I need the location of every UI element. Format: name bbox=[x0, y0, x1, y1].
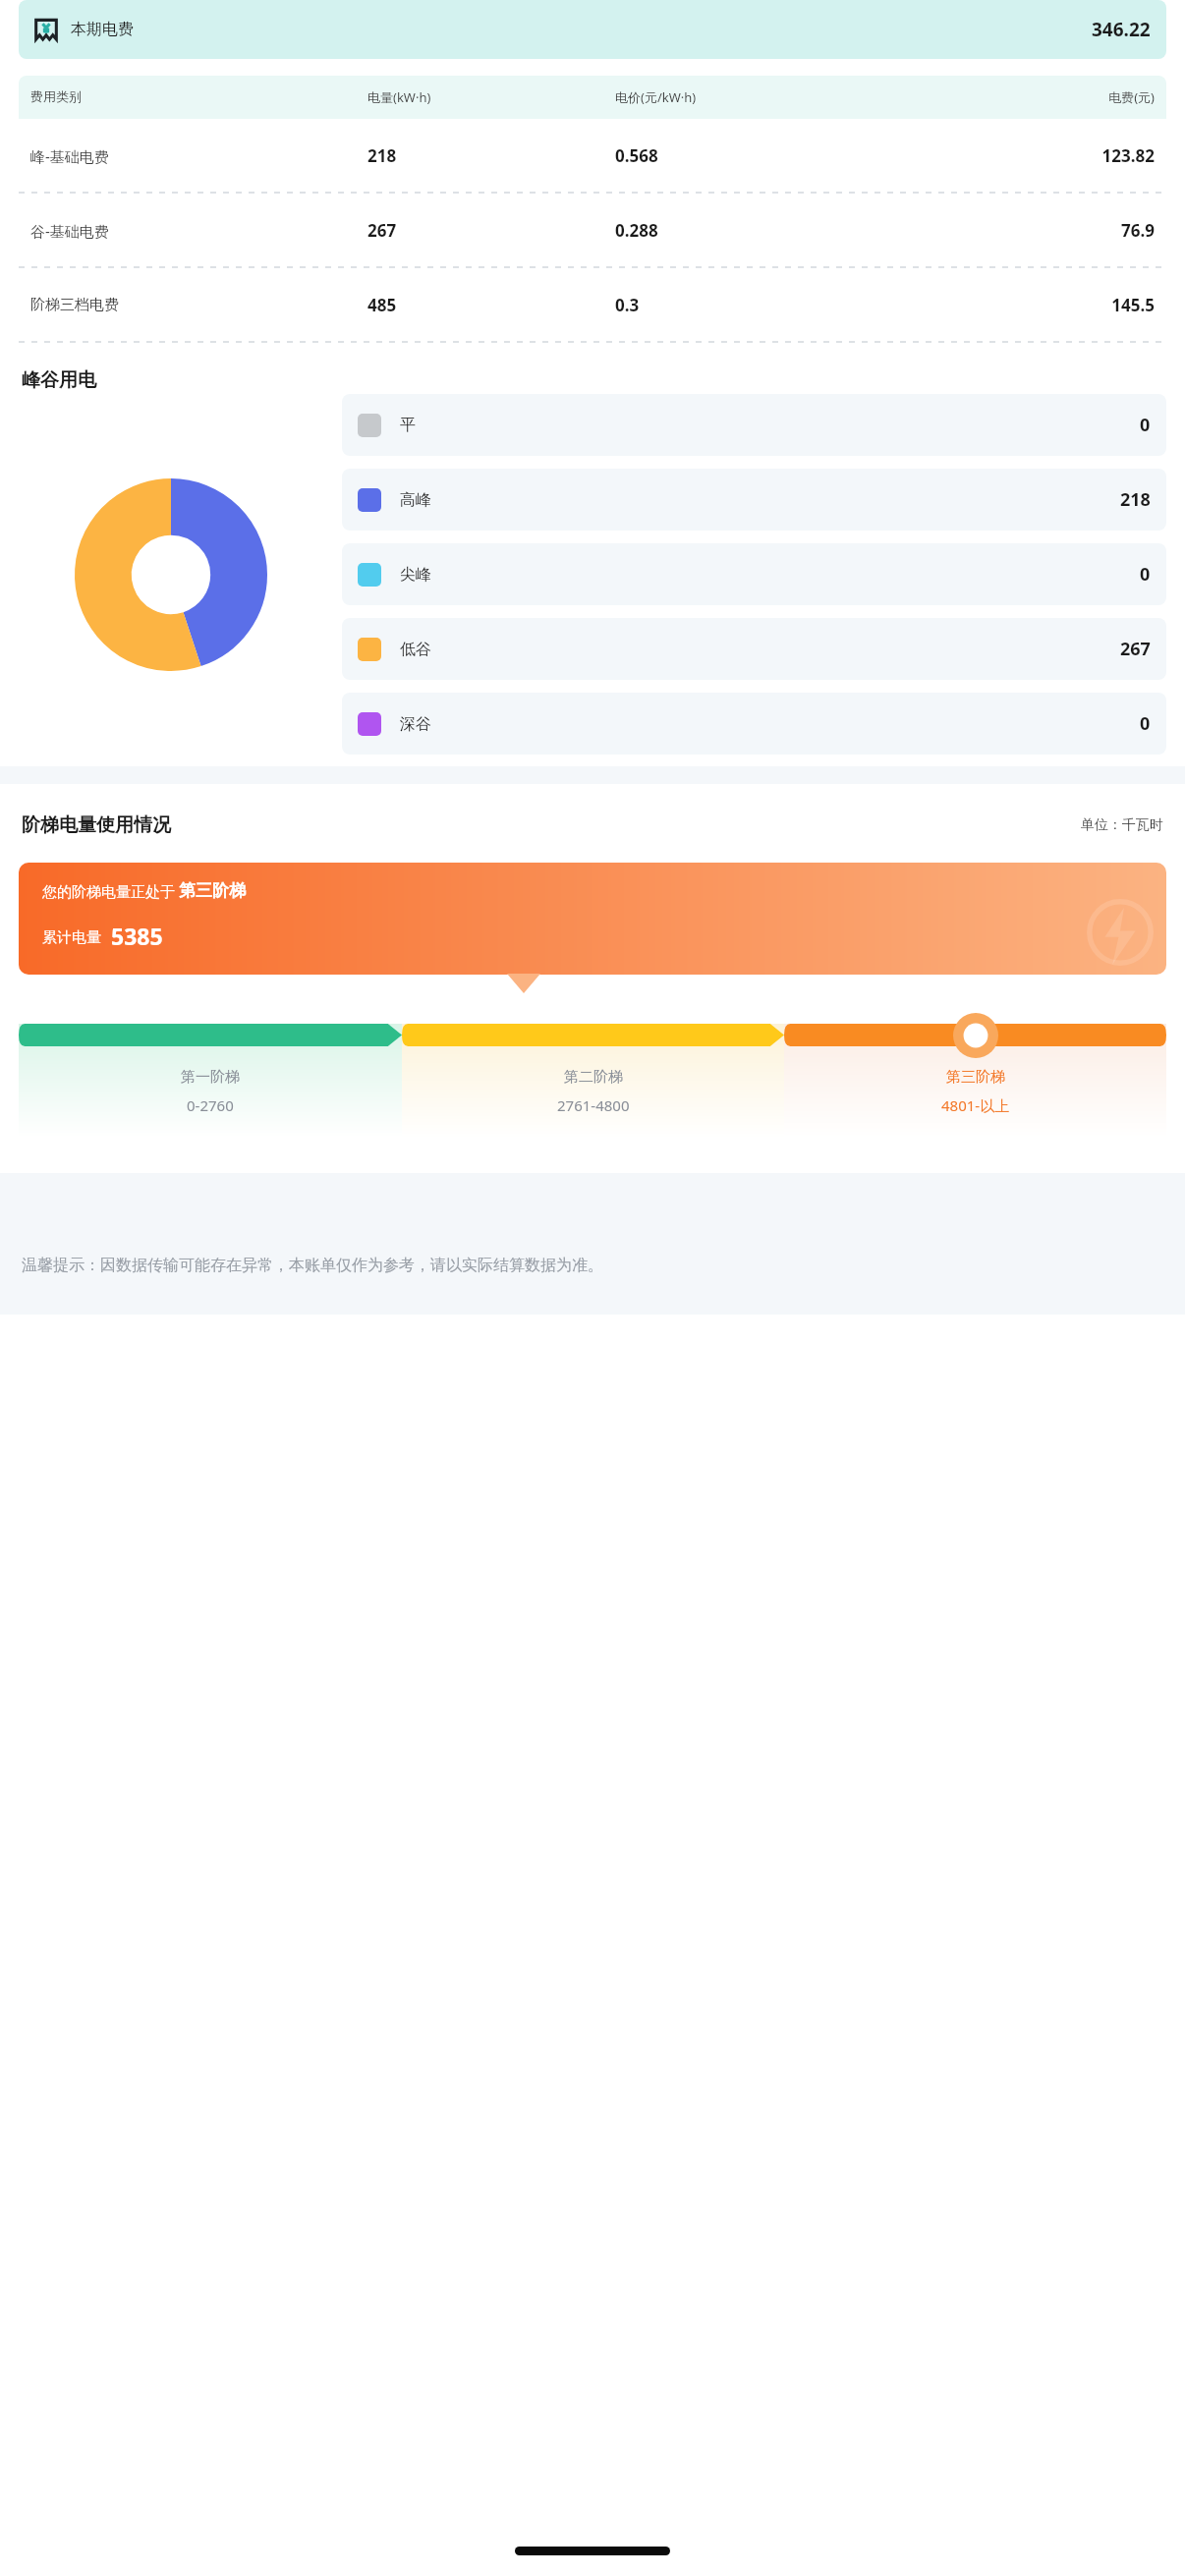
button[interactable]: 高峰 bbox=[342, 469, 1166, 531]
staticText: 峰谷用电 bbox=[22, 368, 96, 392]
button[interactable]: 平 bbox=[342, 394, 1166, 456]
staticText: 346.22 bbox=[1092, 17, 1151, 42]
staticText: 峰-基础电费 bbox=[30, 146, 367, 166]
staticText: 267 bbox=[1120, 637, 1151, 661]
staticText: 0.568 bbox=[615, 144, 907, 167]
button[interactable]: 您的阶梯电量正处于 bbox=[19, 863, 1166, 975]
staticText: 低谷 bbox=[400, 640, 431, 659]
staticText: 0-2760 bbox=[187, 1095, 234, 1115]
button[interactable]: 第一阶梯 bbox=[19, 1024, 402, 1138]
button[interactable]: 本期电费 bbox=[19, 0, 1166, 59]
button[interactable]: 深谷 bbox=[342, 693, 1166, 755]
staticText: 高峰 bbox=[400, 490, 431, 510]
staticText: 平 bbox=[400, 416, 416, 435]
staticText: 温馨提示：因数据传输可能存在异常，本账单仅作为参考，请以实际结算数据为准。 bbox=[22, 1256, 603, 1275]
staticText: 谷-基础电费 bbox=[30, 221, 367, 241]
staticText: 0 bbox=[1140, 711, 1151, 736]
staticText: 218 bbox=[1120, 487, 1151, 512]
button[interactable]: 第二阶梯 bbox=[402, 1024, 784, 1138]
staticText: 0 bbox=[1140, 413, 1151, 437]
staticText: 5385 bbox=[111, 921, 163, 951]
staticText: 单位：千瓦时 bbox=[1081, 816, 1163, 834]
staticText: 123.82 bbox=[907, 144, 1155, 167]
staticText: 尖峰 bbox=[400, 565, 431, 585]
staticText: 电价(元/kW·h) bbox=[615, 88, 907, 106]
staticText: 电量(kW·h) bbox=[367, 88, 615, 106]
button[interactable]: 第三阶梯 bbox=[784, 1024, 1166, 1138]
staticText: 第二阶梯 bbox=[564, 1068, 623, 1087]
staticText: 第三阶梯 bbox=[946, 1068, 1005, 1087]
staticText: 电费(元) bbox=[907, 88, 1155, 106]
staticText: 267 bbox=[367, 219, 615, 242]
button[interactable]: 低谷 bbox=[342, 618, 1166, 680]
staticText: 费用类别 bbox=[30, 88, 367, 104]
staticText: 第三阶梯 bbox=[179, 880, 246, 901]
staticText: 本期电费 bbox=[71, 20, 134, 39]
staticText: 2761-4800 bbox=[557, 1095, 630, 1115]
staticText: 0 bbox=[1140, 562, 1151, 587]
button[interactable]: 阶梯三档电费 bbox=[19, 268, 1166, 342]
staticText: 阶梯电量使用情况 bbox=[22, 813, 171, 837]
staticText: 深谷 bbox=[400, 714, 431, 734]
staticText: 第一阶梯 bbox=[181, 1068, 240, 1087]
button[interactable]: 尖峰 bbox=[342, 543, 1166, 605]
staticText: 阶梯三档电费 bbox=[30, 296, 367, 314]
staticText: 0.3 bbox=[615, 294, 907, 316]
button[interactable]: 谷-基础电费 bbox=[19, 194, 1166, 267]
staticText: 145.5 bbox=[907, 294, 1155, 316]
staticText: 4801-以上 bbox=[941, 1095, 1010, 1115]
staticText: 76.9 bbox=[907, 219, 1155, 242]
staticText: 您的阶梯电量正处于 bbox=[42, 881, 179, 901]
staticText: 累计电量 bbox=[42, 926, 105, 946]
staticText: 218 bbox=[367, 144, 615, 167]
staticText: 485 bbox=[367, 294, 615, 316]
staticText: 0.288 bbox=[615, 219, 907, 242]
button[interactable]: 峰-基础电费 bbox=[19, 119, 1166, 193]
